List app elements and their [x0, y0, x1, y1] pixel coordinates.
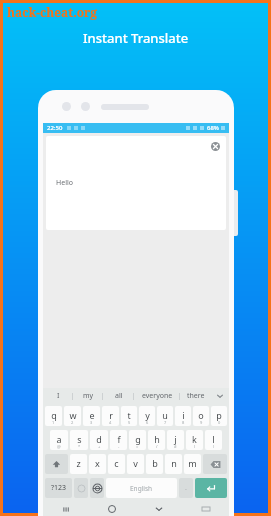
button[interactable]: h: [148, 430, 165, 450]
staticText: @: [57, 444, 61, 449]
staticText: e: [89, 409, 95, 421]
button[interactable]: x: [89, 454, 106, 474]
button[interactable]: o: [193, 406, 209, 426]
staticText: 68%: [207, 124, 219, 132]
button[interactable]: k: [186, 430, 203, 450]
staticText: everyone: [142, 391, 173, 401]
staticText: Hello: [56, 178, 73, 188]
button[interactable]: Change language: [90, 478, 104, 498]
button[interactable]: Clear text: [211, 142, 220, 151]
button[interactable]: l: [205, 430, 222, 450]
staticText: -: [118, 444, 120, 449]
button[interactable]: my: [73, 388, 103, 404]
staticText: 1: [52, 420, 55, 425]
staticText: l: [212, 433, 215, 445]
button[interactable]: n: [165, 454, 182, 474]
button[interactable]: Enter: [195, 478, 227, 498]
button[interactable]: r: [102, 406, 119, 426]
button[interactable]: a: [50, 430, 68, 450]
button[interactable]: English: [106, 478, 177, 498]
button[interactable]: j: [167, 430, 184, 450]
staticText: (: [194, 444, 196, 449]
staticText: m: [188, 457, 197, 469]
staticText: f: [117, 433, 121, 445]
button[interactable]: More suggestions: [211, 388, 229, 404]
staticText: o: [198, 409, 204, 421]
staticText: 9: [200, 420, 203, 425]
staticText: t: [127, 409, 131, 421]
staticText: #: [174, 444, 177, 449]
staticText: 7: [164, 420, 167, 425]
staticText: n: [171, 457, 177, 469]
staticText: w: [69, 409, 77, 421]
button[interactable]: I: [43, 388, 73, 404]
button[interactable]: v: [127, 454, 144, 474]
button[interactable]: i: [175, 406, 191, 426]
button[interactable]: e: [83, 406, 100, 426]
staticText: r: [109, 409, 113, 421]
button[interactable]: d: [90, 430, 108, 450]
staticText: 22:50: [47, 124, 63, 132]
button[interactable]: w: [64, 406, 81, 426]
staticText: c: [114, 457, 119, 469]
staticText: all: [115, 391, 123, 401]
button[interactable]: y: [139, 406, 155, 426]
button[interactable]: g: [129, 430, 146, 450]
staticText: .: [185, 483, 187, 493]
button[interactable]: s: [70, 430, 88, 450]
button[interactable]: all: [103, 388, 134, 404]
staticText: b: [152, 457, 158, 469]
button[interactable]: Emoji: [74, 478, 88, 498]
staticText: j: [174, 433, 177, 445]
button[interactable]: Shift: [45, 454, 68, 474]
staticText: /: [156, 444, 158, 449]
button[interactable]: everyone: [134, 388, 180, 404]
button[interactable]: ?123: [45, 478, 72, 498]
staticText: 3: [90, 420, 93, 425]
staticText: z: [76, 457, 81, 469]
staticText: *: [78, 444, 81, 449]
staticText: d: [96, 433, 102, 445]
button[interactable]: c: [108, 454, 125, 474]
button[interactable]: m: [184, 454, 201, 474]
staticText: u: [162, 409, 168, 421]
staticText: q: [51, 409, 57, 421]
staticText: 6: [146, 420, 149, 425]
staticText: ?123: [51, 483, 67, 493]
staticText: v: [133, 457, 138, 469]
staticText: hack-cheat.org: [7, 4, 98, 20]
button[interactable]: b: [146, 454, 163, 474]
staticText: k: [192, 433, 197, 445]
staticText: =: [136, 444, 139, 449]
button[interactable]: Backspace: [203, 454, 227, 474]
button[interactable]: q: [45, 406, 62, 426]
button[interactable]: Keyboard layout: [182, 502, 229, 516]
staticText: ): [213, 444, 215, 449]
staticText: there: [187, 391, 205, 401]
button[interactable]: Back: [135, 502, 182, 516]
button[interactable]: t: [121, 406, 137, 426]
staticText: 0: [218, 420, 221, 425]
button[interactable]: Home: [89, 502, 135, 516]
button[interactable]: z: [70, 454, 87, 474]
staticText: Instant Translate: [83, 29, 189, 47]
button[interactable]: Recents: [43, 502, 89, 516]
staticText: +: [98, 444, 101, 449]
staticText: y: [145, 409, 150, 421]
staticText: I: [57, 391, 60, 401]
staticText: 5: [128, 420, 131, 425]
button[interactable]: u: [157, 406, 173, 426]
staticText: i: [182, 409, 185, 421]
staticText: my: [83, 391, 94, 401]
button[interactable]: f: [110, 430, 127, 450]
staticText: English: [130, 484, 153, 493]
staticText: 2: [71, 420, 74, 425]
staticText: p: [216, 409, 222, 421]
staticText: s: [77, 433, 82, 445]
button[interactable]: p: [211, 406, 227, 426]
staticText: 8: [182, 420, 185, 425]
staticText: h: [154, 433, 160, 445]
button[interactable]: there: [180, 388, 211, 404]
staticText: g: [135, 433, 141, 445]
